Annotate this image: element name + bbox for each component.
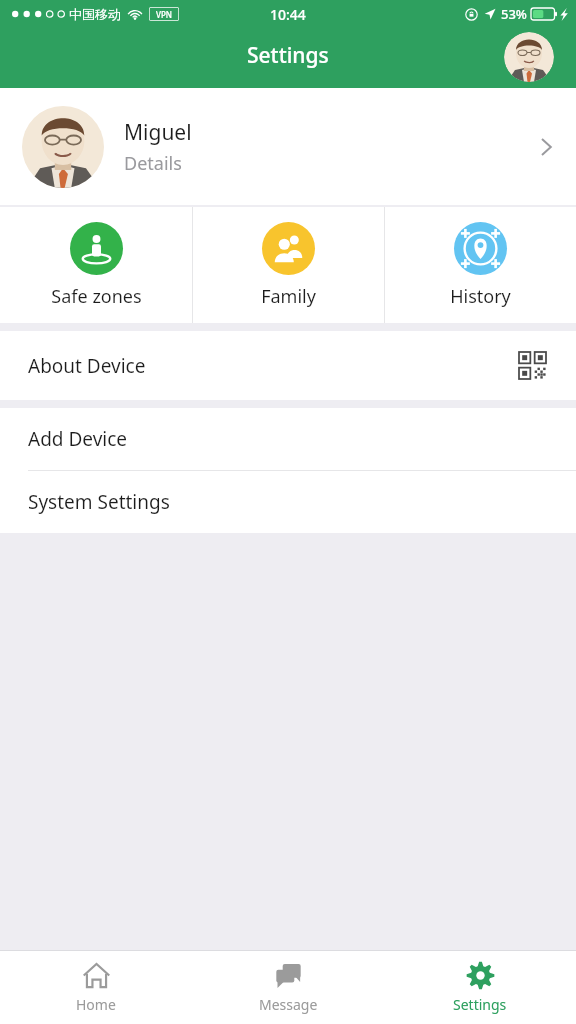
- staticText: VPN: [156, 9, 173, 20]
- button[interactable]: Profile: [504, 32, 554, 82]
- button[interactable]: Add Device: [0, 408, 576, 470]
- button[interactable]: History: [385, 207, 576, 323]
- staticText: 53%: [501, 5, 527, 23]
- staticText: Miguel: [124, 118, 192, 147]
- button[interactable]: System Settings: [0, 471, 576, 533]
- staticText: Settings: [247, 41, 329, 70]
- button[interactable]: Settings: [384, 951, 576, 1024]
- button[interactable]: Message: [192, 951, 384, 1024]
- staticText: Safe zones: [51, 284, 142, 309]
- button[interactable]: Home: [0, 951, 192, 1024]
- staticText: Family: [261, 284, 316, 309]
- staticText: Home: [76, 995, 116, 1014]
- button[interactable]: About Device: [0, 331, 576, 400]
- button[interactable]: Safe zones: [0, 207, 192, 323]
- staticText: History: [450, 284, 511, 309]
- staticText: 中国移动: [69, 6, 121, 22]
- staticText: Settings: [453, 995, 507, 1014]
- staticText: Add Device: [28, 426, 128, 452]
- button[interactable]: Family: [193, 207, 384, 323]
- staticText: About Device: [28, 353, 146, 379]
- staticText: Message: [259, 995, 318, 1014]
- staticText: Details: [124, 151, 182, 176]
- staticText: System Settings: [28, 489, 170, 515]
- button[interactable]: Miguel: [0, 88, 576, 205]
- staticText: 10:44: [270, 5, 306, 24]
